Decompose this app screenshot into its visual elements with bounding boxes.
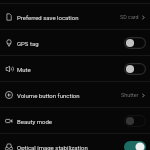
staticText: Shutter bbox=[121, 92, 139, 98]
button[interactable]: Volume button function bbox=[0, 82, 150, 108]
staticText: Preferred save location bbox=[17, 14, 120, 21]
button[interactable]: Preferred save location bbox=[0, 4, 150, 30]
button[interactable]: Toggle bbox=[124, 115, 146, 127]
staticText: Beauty mode bbox=[17, 118, 124, 125]
button[interactable]: Toggle bbox=[124, 37, 146, 49]
button[interactable]: Toggle bbox=[124, 141, 146, 150]
button[interactable]: Toggle bbox=[124, 63, 146, 75]
button[interactable]: GPS tag bbox=[0, 30, 150, 56]
button[interactable]: Optical image stabilization bbox=[0, 134, 150, 150]
staticText: Volume button function bbox=[17, 92, 121, 99]
staticText: Mute bbox=[17, 66, 124, 73]
button[interactable]: Beauty mode bbox=[0, 108, 150, 134]
staticText: Optical image stabilization bbox=[17, 144, 124, 150]
staticText: SD card bbox=[120, 14, 139, 20]
button[interactable]: Mute bbox=[0, 56, 150, 82]
staticText: GPS tag bbox=[17, 40, 124, 47]
